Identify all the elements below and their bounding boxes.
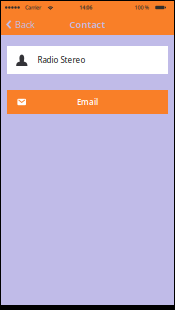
staticText: 100 % <box>134 4 149 11</box>
staticText: 14:06 <box>79 4 92 11</box>
staticText: Contact <box>69 18 105 31</box>
button[interactable]: Email <box>7 90 168 114</box>
staticText: Carrier <box>25 4 41 11</box>
button[interactable]: Back <box>1 14 39 35</box>
staticText: Radio Stereo <box>38 55 86 65</box>
staticText: Back <box>15 18 35 31</box>
staticText: Email <box>77 97 98 107</box>
